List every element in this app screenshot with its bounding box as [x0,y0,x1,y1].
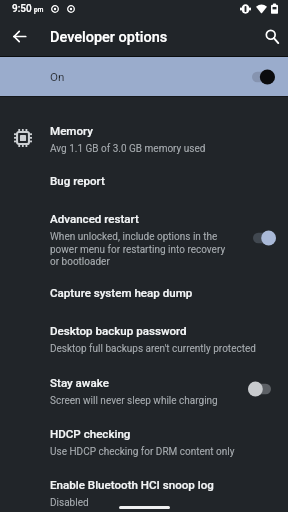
button[interactable]: Stay awake [0,367,288,418]
button[interactable]: Desktop backup password [0,315,288,367]
staticText: Disabled [50,497,89,509]
staticText: When unlocked, include options in the po… [50,231,226,267]
staticText: Enable Bluetooth HCI snoop log [50,478,214,492]
button[interactable]: Bug report [0,165,288,203]
staticText: Use HDCP checking for DRM content only [50,446,235,458]
staticText: Advanced restart [50,212,139,226]
button[interactable]: Enable Bluetooth HCI snoop log [0,469,288,512]
staticText: Developer options [50,29,168,46]
staticText: HDCP checking [50,427,131,441]
button[interactable]: On [0,57,288,96]
staticText: pm [34,6,44,14]
button[interactable]: Advanced restart [0,203,288,277]
button[interactable]: HDCP checking [0,418,288,469]
button[interactable]: Search [260,25,284,49]
staticText: Bug report [50,174,105,188]
button[interactable]: Capture system heap dump [0,277,288,315]
button[interactable]: Back [7,24,31,48]
staticText: Stay awake [50,376,109,390]
staticText: Screen will never sleep while charging [50,395,218,407]
staticText: Memory [50,124,93,138]
staticText: Avg 1.1 GB of 3.0 GB memory used [50,143,206,155]
staticText: On [50,70,65,84]
staticText: Desktop full backups aren't currently pr… [50,343,256,355]
staticText: Desktop backup password [50,324,187,338]
staticText: Capture system heap dump [50,286,193,300]
button[interactable]: Memory [0,115,288,165]
staticText: 9:50 [12,3,32,15]
